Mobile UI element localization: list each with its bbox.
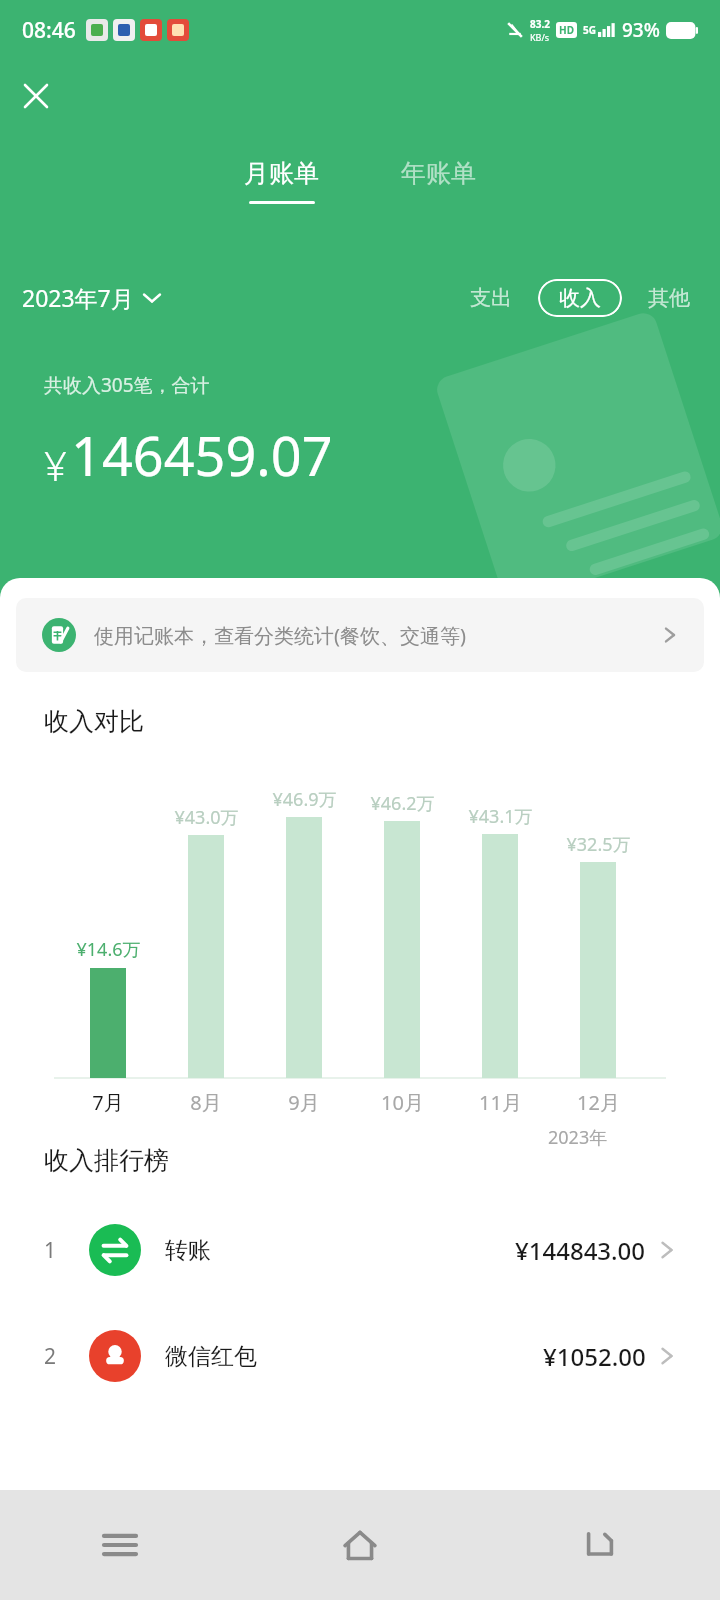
- staticText: 12月: [577, 1089, 620, 1116]
- staticText: 146459.07: [71, 418, 333, 492]
- staticText: 83.2: [530, 17, 550, 31]
- staticText: ¥144843.00: [515, 1234, 646, 1267]
- staticText: 其他: [648, 285, 690, 311]
- staticText: ¥: [44, 438, 67, 492]
- staticText: 年账单: [401, 158, 476, 189]
- staticText: ¥46.9万: [272, 787, 337, 812]
- staticText: 5G: [583, 23, 596, 37]
- staticText: 1: [44, 1236, 57, 1265]
- staticText: 9月: [288, 1089, 320, 1116]
- button[interactable]: 年账单: [391, 158, 486, 189]
- staticText: 8月: [190, 1089, 222, 1116]
- staticText: 收入排行榜: [44, 1145, 169, 1176]
- button[interactable]: 月账单: [234, 158, 329, 204]
- staticText: 2023年7月: [22, 282, 134, 313]
- button[interactable]: 收入: [538, 279, 622, 317]
- staticText: 支出: [470, 285, 512, 311]
- button[interactable]: 2: [0, 1320, 720, 1392]
- staticText: ¥1052.00: [543, 1340, 646, 1373]
- staticText: HD: [559, 23, 574, 37]
- staticText: 月账单: [244, 158, 319, 189]
- staticText: KB/s: [530, 31, 550, 43]
- button[interactable]: 支出: [462, 279, 520, 317]
- button[interactable]: Close: [14, 74, 58, 118]
- staticText: 收入对比: [44, 706, 144, 737]
- staticText: 共收入305笔，合计: [44, 372, 210, 398]
- staticText: 转账: [165, 1236, 211, 1265]
- staticText: 93%: [622, 17, 660, 43]
- staticText: 收入: [559, 285, 601, 311]
- staticText: 使用记账本，查看分类统计(餐饮、交通等): [94, 622, 466, 649]
- staticText: ¥46.2万: [370, 791, 435, 816]
- staticText: ¥43.0万: [174, 805, 239, 830]
- button[interactable]: 2023年7月: [22, 276, 160, 319]
- button[interactable]: Back: [480, 1490, 720, 1600]
- staticText: 微信红包: [165, 1342, 257, 1371]
- button[interactable]: 其他: [640, 279, 698, 317]
- staticText: 08:46: [22, 16, 76, 45]
- staticText: ¥14.6万: [76, 937, 141, 962]
- button[interactable]: 1: [0, 1214, 720, 1286]
- staticText: ¥32.5万: [566, 832, 631, 857]
- staticText: 11月: [479, 1089, 522, 1116]
- button[interactable]: 使用记账本，查看分类统计(餐饮、交通等): [16, 598, 704, 672]
- staticText: 7月: [92, 1089, 124, 1116]
- button[interactable]: Recents: [0, 1490, 240, 1600]
- staticText: 2023年: [548, 1125, 608, 1150]
- staticText: ¥43.1万: [468, 804, 533, 829]
- staticText: 10月: [381, 1089, 424, 1116]
- staticText: 2: [44, 1342, 57, 1371]
- button[interactable]: Home: [240, 1490, 480, 1600]
